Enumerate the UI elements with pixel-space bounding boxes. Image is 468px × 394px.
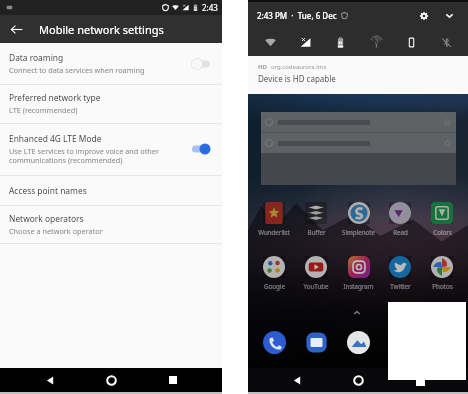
button[interactable]: Back: [0, 15, 32, 43]
staticText: Buffer: [307, 228, 326, 236]
staticText: Mobile network settings: [39, 22, 164, 37]
button[interactable]: Google: [254, 256, 294, 297]
staticText: Photos: [432, 282, 453, 290]
button[interactable]: [261, 112, 456, 132]
button[interactable]: All apps: [350, 306, 363, 319]
button[interactable]: Photos: [422, 256, 462, 297]
button[interactable]: Bluetooth off: [431, 28, 461, 56]
button[interactable]: Dock app 1: [263, 331, 286, 354]
staticText: Simplenote: [342, 228, 375, 236]
button[interactable]: Instagram: [338, 256, 378, 297]
button[interactable]: [261, 112, 456, 185]
staticText: Read: [393, 228, 408, 236]
staticText: Use LTE services to improve voice and ot…: [9, 146, 159, 165]
button[interactable]: Dock app 2: [305, 331, 328, 354]
button[interactable]: Switch off: [189, 56, 213, 72]
staticText: Twitter: [390, 282, 411, 290]
button[interactable]: Read: [380, 202, 420, 243]
staticText: Instagram: [343, 282, 374, 290]
button[interactable]: Access point names: [0, 176, 222, 205]
button[interactable]: Dock app 3: [347, 331, 370, 354]
button[interactable]: YouTube: [296, 256, 336, 297]
staticText: 2:43 PM · Tue, 6 Dec: [257, 10, 337, 21]
staticText: Colors: [433, 228, 452, 236]
button[interactable]: Recent apps: [407, 368, 431, 392]
button[interactable]: Recent apps: [161, 368, 185, 392]
staticText: Access point names: [9, 185, 87, 196]
button[interactable]: HD: [248, 56, 468, 94]
button[interactable]: Battery saver: [325, 28, 355, 56]
staticText: Connect to data services when roaming: [9, 65, 145, 75]
staticText: Wunderlist: [258, 228, 290, 236]
staticText: Preferred network type: [9, 92, 101, 103]
button[interactable]: Home: [99, 368, 123, 392]
button[interactable]: Data roaming: [0, 43, 222, 84]
button[interactable]: Switch on: [189, 141, 213, 157]
staticText: 2:43: [202, 2, 218, 13]
button[interactable]: [261, 133, 456, 153]
button[interactable]: Wunderlist: [254, 202, 294, 243]
staticText: Choose a network operator: [9, 226, 103, 236]
staticText: LTE (recommended): [9, 105, 78, 115]
button[interactable]: Mobile data off: [290, 28, 320, 56]
staticText: Google: [264, 282, 285, 290]
staticText: Enhanced 4G LTE Mode: [9, 133, 102, 144]
button[interactable]: Settings: [416, 8, 431, 23]
button[interactable]: Twitter: [380, 256, 420, 297]
button[interactable]: Back: [38, 368, 62, 392]
staticText: HD: [258, 63, 267, 71]
button[interactable]: Home: [346, 368, 370, 392]
button[interactable]: Preferred network type: [0, 85, 222, 123]
staticText: YouTube: [303, 282, 329, 290]
button[interactable]: Network operators: [0, 206, 222, 243]
staticText: Data roaming: [9, 52, 64, 63]
staticText: Network operators: [9, 213, 84, 224]
button[interactable]: Back: [285, 368, 309, 392]
staticText: org.codeaurora.ims: [271, 63, 327, 71]
button[interactable]: Enhanced 4G LTE Mode: [0, 124, 222, 175]
button[interactable]: Cast off: [361, 28, 391, 56]
button[interactable]: Simplenote: [338, 202, 378, 243]
button[interactable]: Auto rotate: [396, 28, 426, 56]
button[interactable]: Collapse: [442, 8, 457, 23]
button[interactable]: Wi-Fi: [255, 28, 285, 56]
staticText: Device is HD capable: [258, 73, 336, 84]
button[interactable]: Buffer: [296, 202, 336, 243]
button[interactable]: Colors: [422, 202, 462, 243]
